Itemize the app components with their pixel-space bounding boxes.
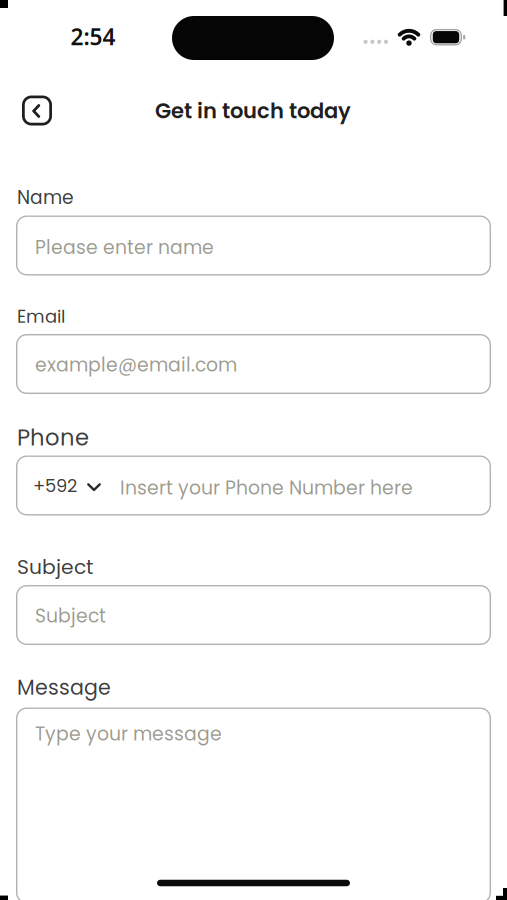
staticText: Name <box>17 184 74 210</box>
staticText: Type your message <box>35 721 222 747</box>
staticText: Email <box>17 304 65 329</box>
textField[interactable]: Type your message <box>35 721 507 747</box>
staticText: Please enter name <box>35 234 214 261</box>
staticText: Subject <box>35 603 106 629</box>
button[interactable]: Select country code <box>33 473 101 498</box>
staticText: Phone <box>17 422 89 453</box>
staticText: Subject <box>17 553 93 581</box>
staticText: Insert your Phone Number here <box>120 475 413 501</box>
staticText: 2:54 <box>70 21 115 51</box>
textField[interactable]: Subject <box>35 603 507 629</box>
textField[interactable]: Insert your Phone Number here <box>120 475 507 501</box>
staticText: +592 <box>33 473 77 498</box>
staticText: Get in touch today <box>155 96 351 126</box>
staticText: Message <box>17 673 111 702</box>
button[interactable]: Back <box>22 95 52 125</box>
staticText: example@email.com <box>35 352 237 378</box>
textField[interactable]: Please enter name <box>35 234 507 261</box>
textField[interactable]: example@email.com <box>35 352 507 378</box>
